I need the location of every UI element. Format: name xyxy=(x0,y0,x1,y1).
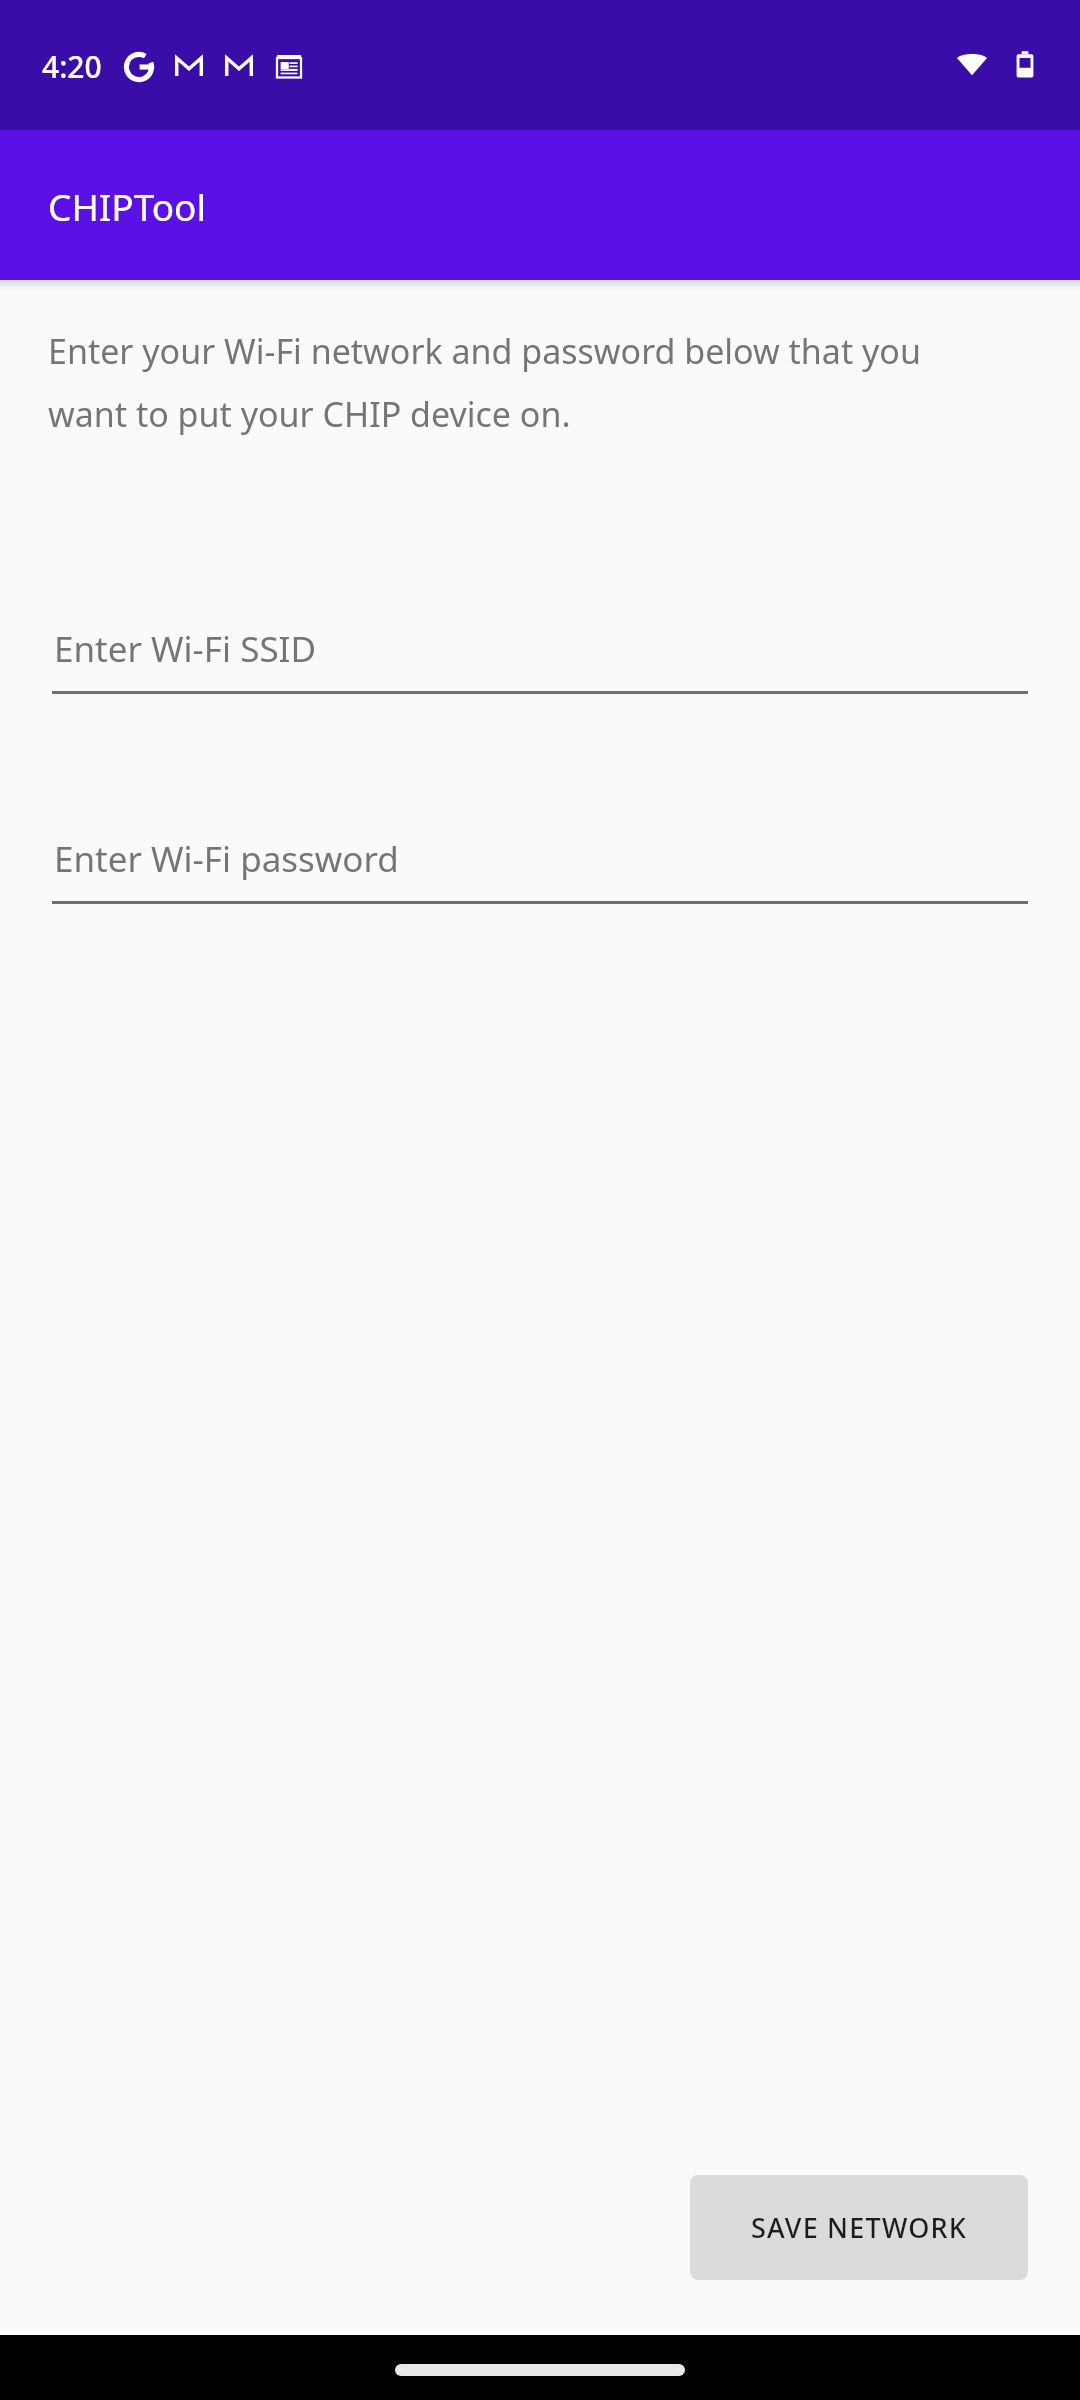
staticText: Enter your Wi-Fi network and password be… xyxy=(48,328,968,437)
staticText: SAVE NETWORK xyxy=(751,2209,968,2246)
staticText: CHIPTool xyxy=(48,181,207,231)
button[interactable]: SAVE NETWORK xyxy=(690,2175,1028,2280)
other: Home gesture xyxy=(395,2364,685,2376)
staticText: Enter Wi-Fi SSID xyxy=(54,625,317,673)
staticText: 4:20 xyxy=(42,46,102,87)
staticText: Enter Wi-Fi password xyxy=(54,835,399,883)
button[interactable]: Enter Wi-Fi SSID xyxy=(52,625,1028,694)
button[interactable]: Enter Wi-Fi password xyxy=(52,835,1028,904)
